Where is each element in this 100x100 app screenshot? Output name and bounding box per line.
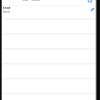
button[interactable] [89, 7, 96, 14]
button[interactable] [2, 19, 95, 34]
staticText: text [3, 5, 11, 10]
button[interactable] [2, 34, 95, 49]
staticText: (text) [3, 10, 10, 14]
button[interactable] [2, 49, 95, 64]
button[interactable] [2, 64, 95, 79]
